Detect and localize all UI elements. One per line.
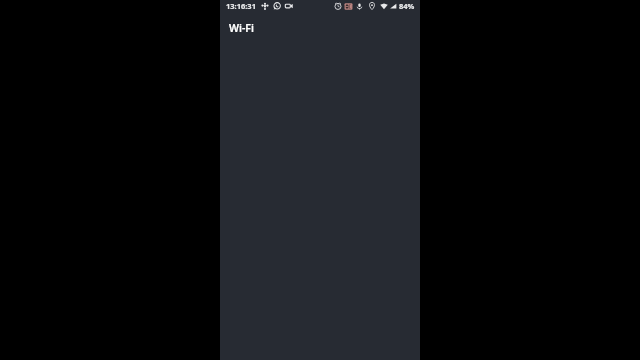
other: Mobile signal — [389, 2, 397, 10]
staticText: 13:16:31 — [226, 1, 256, 11]
other: WhatsApp notification — [273, 2, 281, 10]
other: Microphone in use — [356, 3, 363, 10]
other: Sync active — [261, 2, 269, 10]
other: SD card — [344, 2, 353, 11]
other: Location in use — [368, 2, 376, 10]
other: Alarm set — [334, 2, 342, 10]
staticText: 84% — [399, 1, 415, 11]
other: Screen recording — [285, 2, 293, 10]
button[interactable]: Wi-Fi — [220, 12, 420, 56]
staticText: Wi-Fi — [229, 21, 254, 35]
other: Wi-Fi signal — [380, 2, 388, 10]
